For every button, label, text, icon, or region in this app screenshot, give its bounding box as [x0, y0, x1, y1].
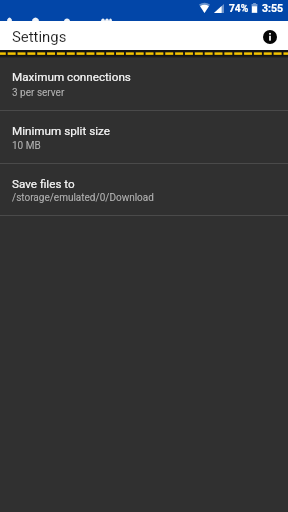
- staticText: Maximum connections: [12, 70, 131, 84]
- staticText: 3:55: [262, 2, 284, 14]
- button[interactable]: [0, 166, 288, 218]
- staticText: Minimum split size: [12, 124, 110, 138]
- staticText: 3 per server: [12, 87, 65, 99]
- button[interactable]: [0, 59, 288, 111]
- button[interactable]: [0, 114, 288, 166]
- staticText: /storage/emulated/0/Download: [12, 192, 154, 204]
- staticText: Save files to: [12, 177, 75, 191]
- staticText: Settings: [12, 28, 67, 45]
- button[interactable]: Info: [263, 30, 277, 44]
- staticText: 74%: [229, 3, 249, 15]
- staticText: 10 MB: [12, 140, 41, 152]
